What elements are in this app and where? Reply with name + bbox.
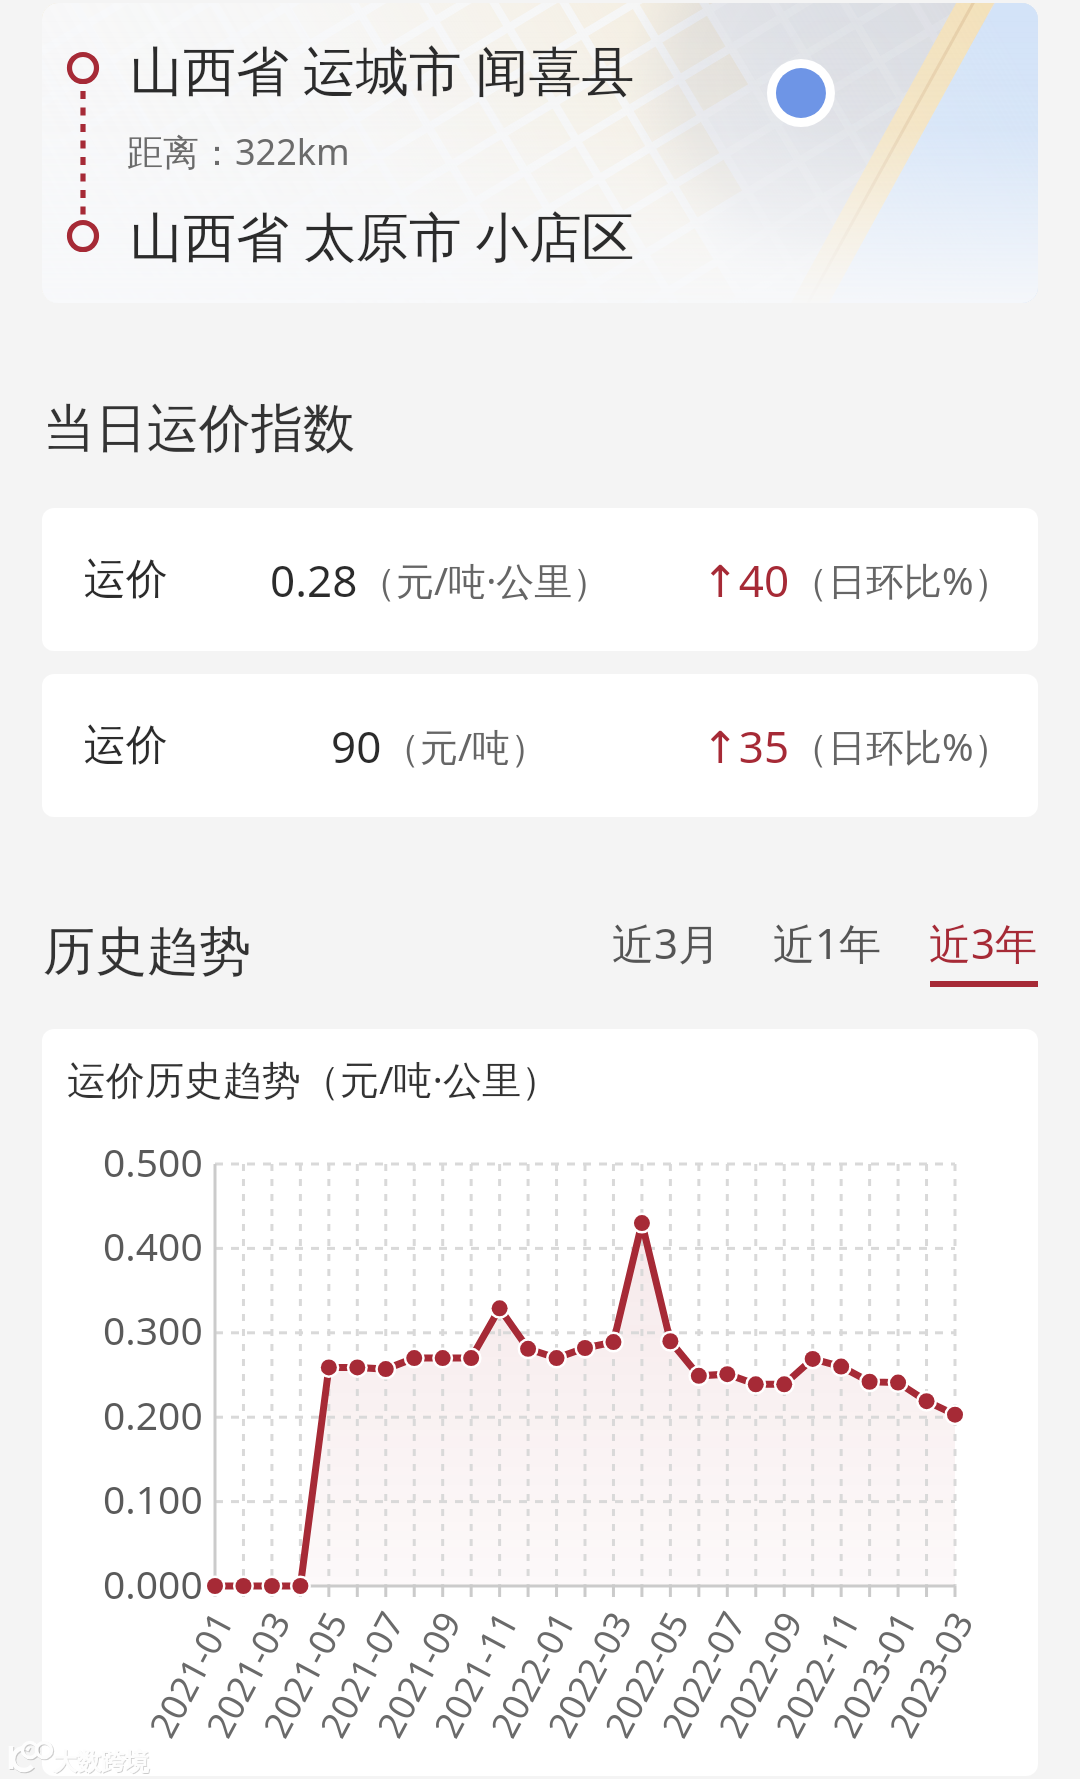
staticText: （元/吨·公里） [358,554,611,606]
staticText: 0.28 [270,550,358,610]
button[interactable]: 近3月 [598,896,735,989]
staticText: 近3月 [612,914,721,971]
staticText: 历史趋势 [43,919,251,985]
button[interactable]: 近1年 [759,896,896,989]
staticText: 山西省 太原市 小店区 [130,199,635,271]
staticText: （日环比%） [790,554,1012,606]
staticText: （日环比%） [790,720,1012,772]
staticText: 当日运价指数 [43,396,355,462]
staticText: （元/吨） [382,720,549,772]
staticText: 近1年 [773,914,882,971]
button[interactable]: 运价 [42,508,1038,651]
staticText: 山西省 运城市 闻喜县 [130,33,635,105]
staticText: 近3年 [929,914,1038,971]
staticText: 运价历史趋势（元/吨·公里） [67,1052,560,1105]
staticText: 大数跨境 [53,1747,149,1777]
button[interactable]: 山西省 运城市 闻喜县 [42,3,1038,303]
staticText: 距离：322km [127,127,350,176]
button[interactable]: 运价 [42,674,1038,817]
staticText: 大数跨境 [54,1748,150,1778]
staticText: 运价 [84,553,168,606]
staticText: ↑40 [702,550,790,610]
button[interactable]: 近3年 [915,896,1052,1005]
staticText: ↑35 [702,716,790,776]
staticText: 运价 [84,719,168,772]
staticText: 90 [331,716,382,776]
